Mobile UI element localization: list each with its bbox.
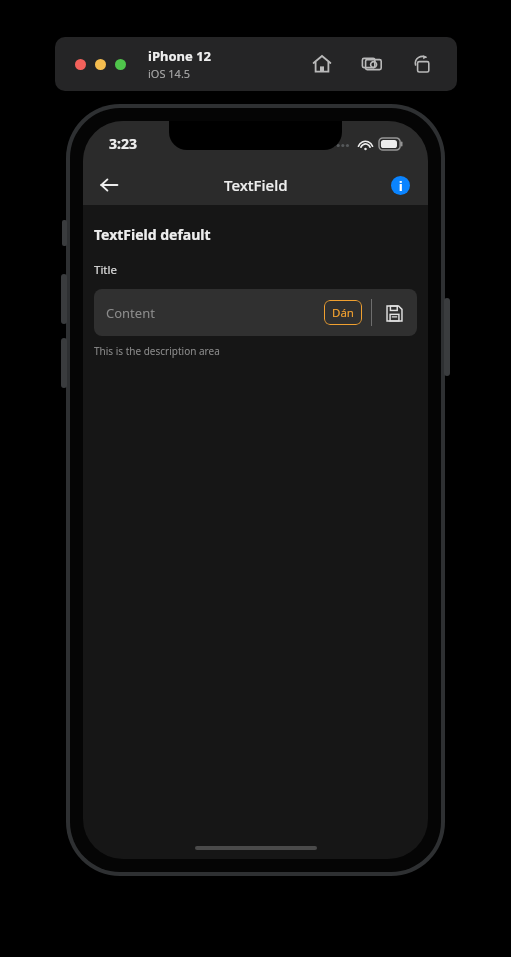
button[interactable]: Volume up [61,274,67,324]
button[interactable]: Info [380,165,420,205]
button[interactable]: Dán [324,300,362,325]
staticText: TextField [224,175,288,195]
button[interactable]: Home [310,52,334,76]
staticText: Title [94,262,117,278]
button[interactable]: Content [94,289,417,336]
button[interactable] [75,59,86,70]
button[interactable] [95,59,106,70]
staticText: Content [106,304,155,322]
staticText: iOS 14.5 [148,66,191,81]
button[interactable]: Screenshot [360,52,384,76]
button[interactable]: Rotate [410,52,434,76]
staticText: iPhone 12 [148,47,211,65]
staticText: i [399,178,403,194]
staticText: This is the description area [94,344,220,358]
button[interactable]: Power [444,298,450,376]
button[interactable]: Back [89,165,129,205]
button[interactable]: Volume down [61,338,67,388]
staticText: 3:23 [109,134,137,153]
staticText: TextField default [94,225,211,244]
staticText: Dán [332,305,354,321]
button[interactable] [115,59,126,70]
button[interactable]: Save [381,300,407,326]
button[interactable]: Silent switch [62,220,67,246]
